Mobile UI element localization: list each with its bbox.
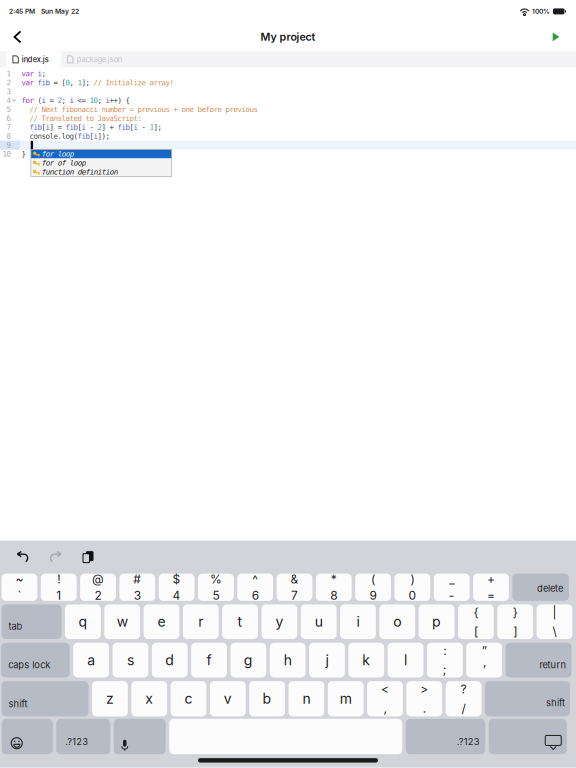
button[interactable]: _ [434,574,470,601]
button[interactable]: e [144,604,179,639]
button[interactable]: Dictate [114,719,166,754]
button[interactable]: delete [512,574,569,601]
button[interactable]: w [104,604,140,639]
button[interactable]: f [191,643,227,677]
button[interactable]: & [277,574,312,601]
staticText: - [137,123,149,132]
button[interactable]: { [458,604,494,639]
staticText: = [487,588,495,602]
staticText: w [117,613,128,630]
button[interactable]: ^ [237,574,273,601]
staticText: .?123 [457,736,480,747]
staticText: , [383,701,386,715]
button[interactable]: return [506,643,572,677]
button[interactable]: g [230,643,266,677]
staticText: ( [371,572,375,586]
button[interactable]: ( [355,574,391,601]
button[interactable]: shift [1,681,88,716]
button[interactable]: t [222,604,258,639]
button[interactable]: ) [394,574,430,601]
button[interactable]: } [497,604,533,639]
staticText: d [165,652,174,668]
button[interactable]: package.json [61,51,132,68]
button[interactable]: p [419,604,454,639]
button[interactable]: .?123 [56,719,110,754]
button[interactable]: Undo [10,547,36,567]
staticText: i [356,613,359,630]
button[interactable]: j [309,643,345,677]
button[interactable]: s [112,643,148,677]
staticText: i [45,123,49,132]
button[interactable]: d [152,643,188,677]
button[interactable]: m [328,681,364,716]
staticText: v [224,690,232,707]
button[interactable]: v [210,681,246,716]
button[interactable]: % [198,574,234,601]
button[interactable]: h [270,643,306,677]
button[interactable]: for loop [31,149,172,158]
staticText: t [238,613,243,630]
button[interactable]: b [249,681,285,716]
staticText: ` [17,588,21,602]
button[interactable]: Hide keyboard [489,719,567,754]
button[interactable]: caps lock [1,643,70,677]
button[interactable]: # [119,574,155,601]
staticText: [ [41,123,45,132]
button[interactable]: n [288,681,324,716]
staticText: ] + [101,123,117,132]
button[interactable]: < [367,681,403,716]
button[interactable]: Redo [43,547,69,567]
button[interactable]: tab [1,604,61,639]
staticText: 6 [6,114,10,123]
button[interactable]: $ [159,574,194,601]
button[interactable]: u [301,604,337,639]
button[interactable]: Paste [76,547,100,567]
staticText: [ [77,123,81,132]
button[interactable]: Emoji [2,719,53,754]
button[interactable]: function definition [31,167,172,177]
button[interactable]: : [427,643,463,677]
staticText: ; [443,662,447,677]
button[interactable]: | [537,604,572,639]
button[interactable]: for of loop [31,158,172,167]
staticText: 8 [330,588,337,602]
button[interactable]: @ [80,574,116,601]
button[interactable]: a [73,643,109,677]
staticText: fib [77,132,89,140]
staticText: 1 [56,588,61,602]
staticText: ]; [81,78,93,87]
button[interactable]: z [92,681,128,716]
button[interactable]: l [388,643,423,677]
button[interactable]: y [261,604,297,639]
button[interactable]: + [473,574,509,601]
button[interactable]: > [406,681,442,716]
staticText: l [404,652,407,668]
staticText: e [157,613,165,630]
button[interactable]: ” [466,643,502,677]
button[interactable]: k [348,643,384,677]
button[interactable]: index.js [6,51,61,68]
staticText: , [69,78,77,87]
button[interactable]: o [379,604,415,639]
staticText: 9 [370,588,377,602]
button[interactable]: x [131,681,167,716]
staticText: 4 [6,96,10,105]
button[interactable]: shift [485,681,570,716]
button[interactable]: ~ [1,574,37,601]
staticText: z [106,690,114,707]
button[interactable]: c [171,681,206,716]
button[interactable]: q [65,604,101,639]
button[interactable]: .?123 [406,719,485,754]
button[interactable]: Run [543,24,569,50]
staticText: [ [129,123,133,132]
button[interactable]: i [340,604,376,639]
button[interactable]: Back [5,24,31,50]
staticText: f [206,652,211,668]
staticText: ^ [252,572,258,586]
button[interactable]: ! [41,574,77,601]
button[interactable]: ? [446,681,481,716]
staticText: for of loop [42,159,86,167]
button[interactable]: * [316,574,352,601]
button[interactable]: r [183,604,219,639]
